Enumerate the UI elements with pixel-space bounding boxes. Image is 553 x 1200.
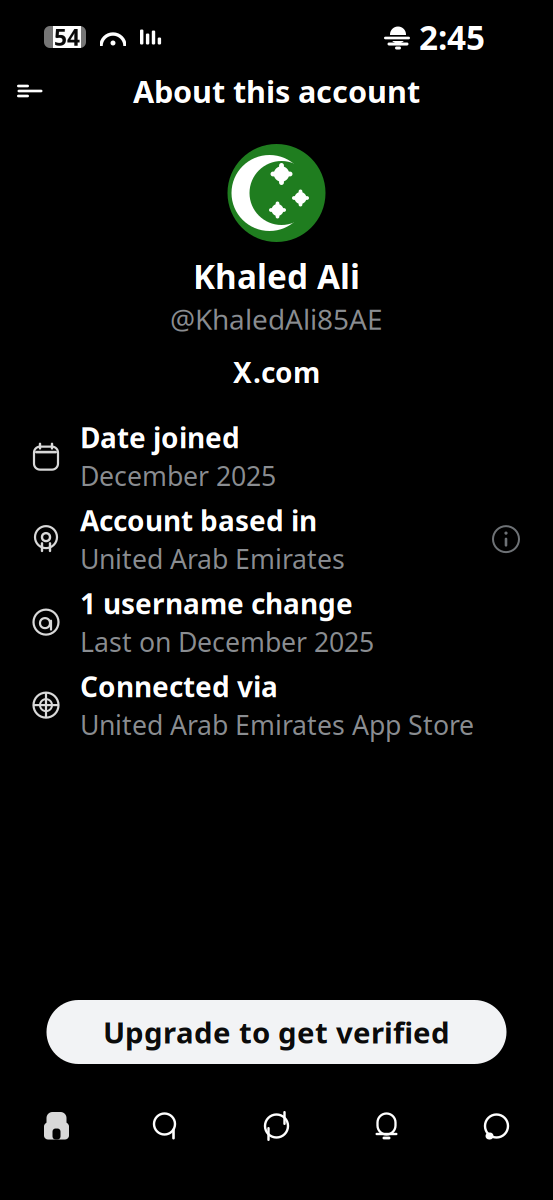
button[interactable]: Upgrade to get verified	[46, 1000, 506, 1064]
button[interactable]: Date joined	[0, 415, 553, 498]
button[interactable]: Messages	[441, 1098, 551, 1154]
staticText: Date joined	[80, 419, 240, 456]
staticText: United Arab Emirates App Store	[80, 707, 474, 742]
staticText: 2:45	[419, 15, 485, 59]
button[interactable]: Back	[4, 66, 56, 116]
button[interactable]: Home	[1, 1098, 111, 1154]
staticText: 1 username change	[80, 585, 353, 622]
staticText: Last on December 2025	[80, 624, 374, 659]
staticText: Upgrade to get verified	[103, 1012, 450, 1051]
staticText: About this account	[133, 71, 420, 111]
staticText: X	[233, 353, 252, 391]
staticText: @KhaledAli85AE	[170, 300, 383, 337]
staticText: Connected via	[80, 668, 278, 705]
button[interactable]: Account based in	[0, 498, 553, 581]
staticText: December 2025	[80, 458, 276, 493]
staticText: .com	[253, 353, 320, 391]
button[interactable]: Connected via	[0, 664, 553, 747]
button[interactable]: 1 username change	[0, 581, 553, 664]
staticText: 54	[54, 22, 80, 52]
button[interactable]: Search	[111, 1098, 221, 1154]
staticText: Account based in	[80, 502, 317, 539]
button[interactable]: Notifications	[331, 1098, 441, 1154]
staticText: Khaled Ali	[193, 254, 360, 298]
button[interactable]: Grok	[221, 1098, 331, 1154]
staticText: United Arab Emirates	[80, 541, 345, 576]
